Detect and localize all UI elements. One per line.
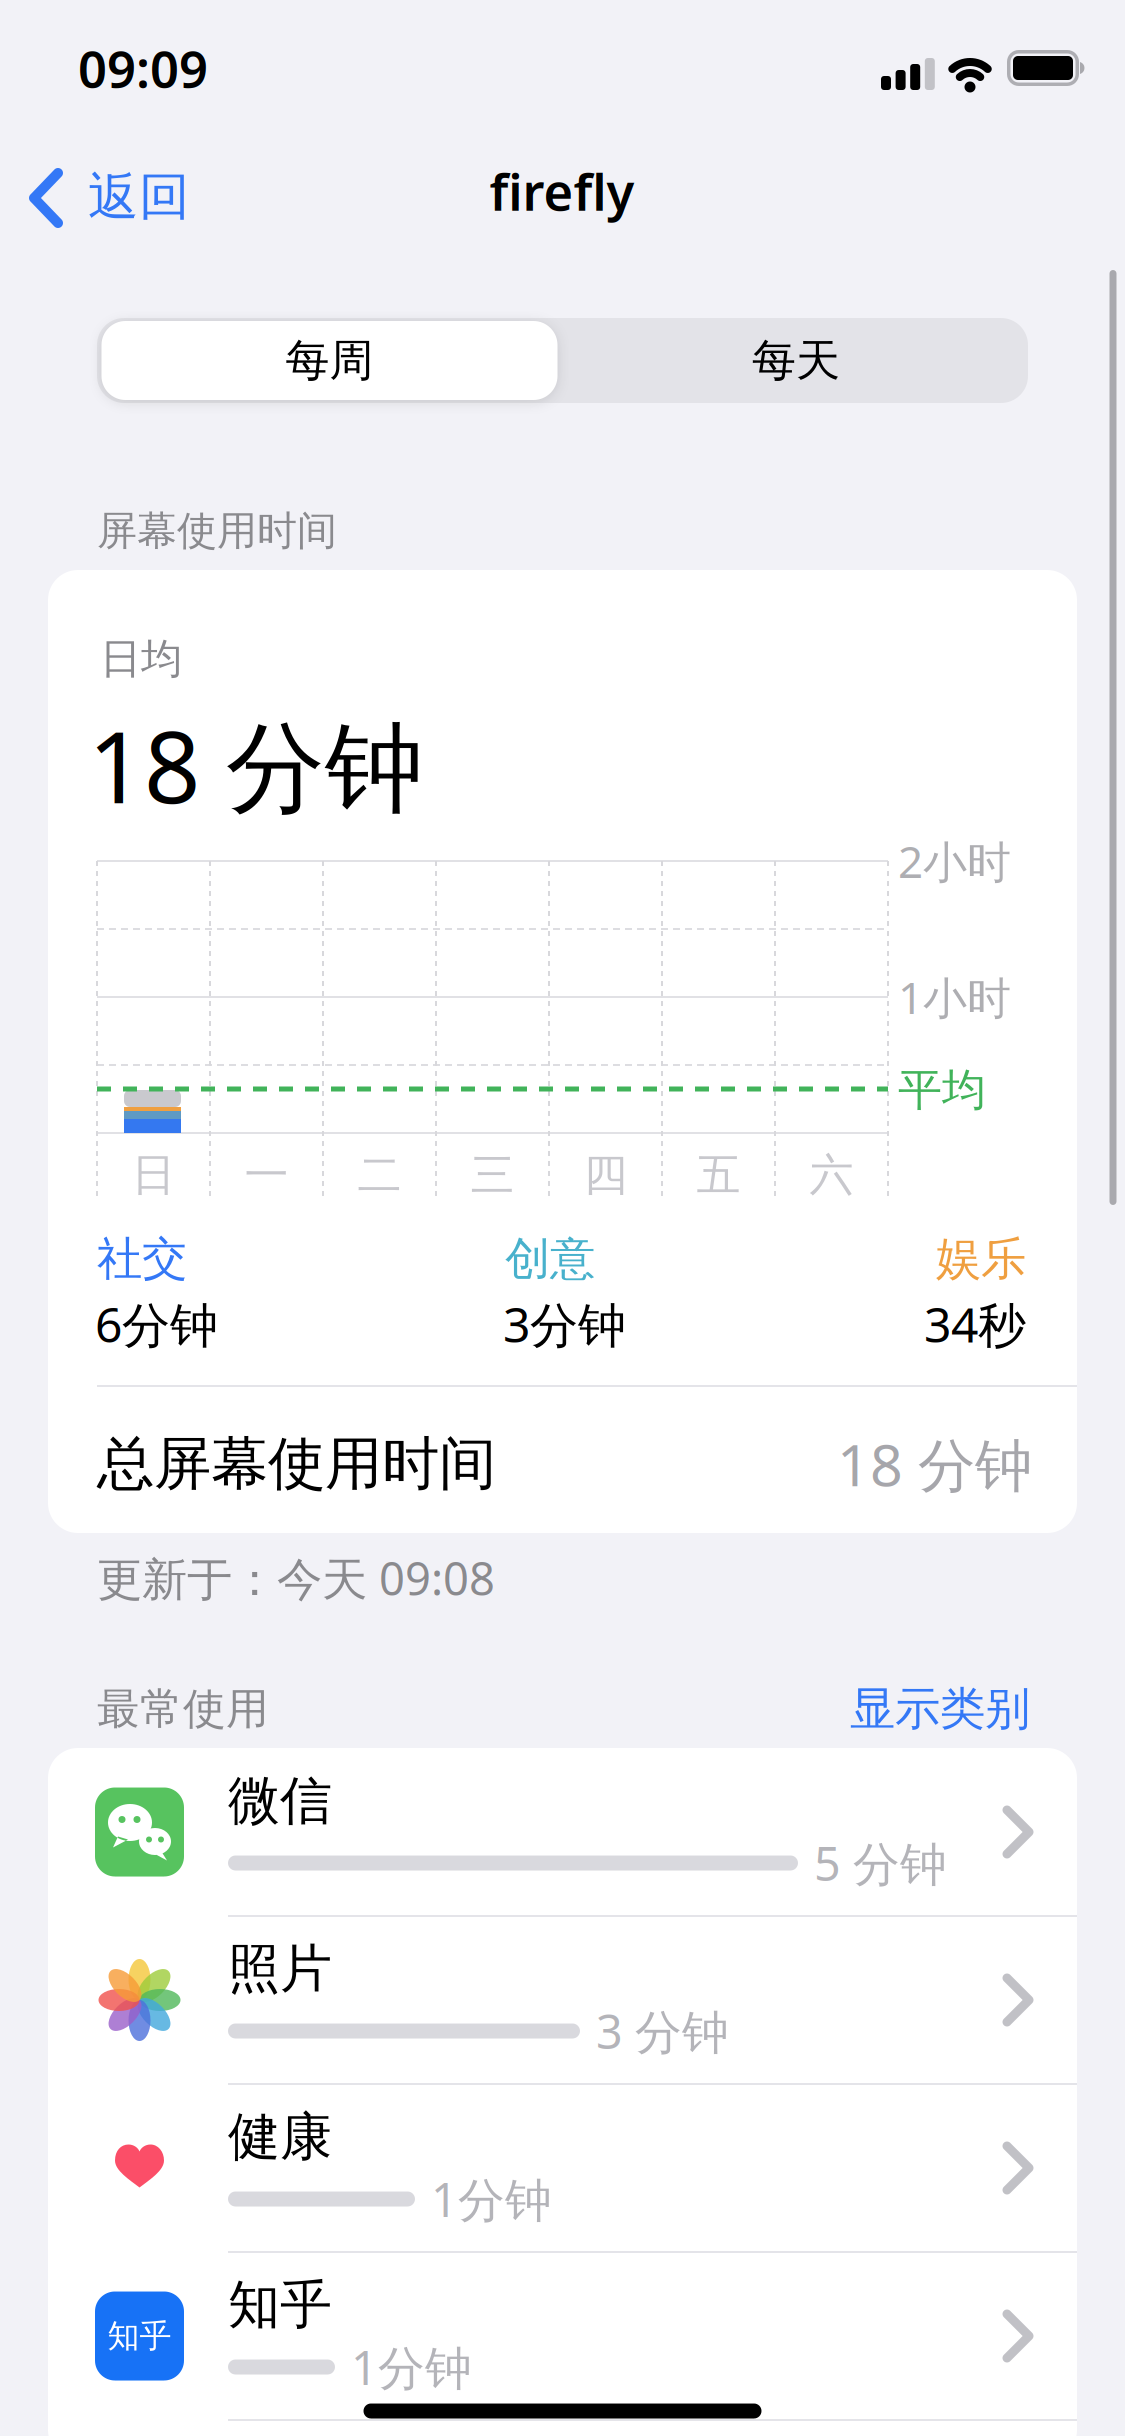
staticText: 四 — [583, 1148, 627, 1202]
staticText: 社交 — [97, 1231, 187, 1287]
staticText: 5 分钟 — [814, 1832, 947, 1894]
staticText: 18 分钟 — [88, 699, 424, 830]
button[interactable]: 知乎 — [48, 2252, 1077, 2420]
staticText: 平均 — [898, 1063, 986, 1117]
staticText: 日 — [131, 1148, 175, 1202]
staticText: 最常使用 — [97, 1683, 269, 1735]
staticText: 返回 — [88, 166, 190, 228]
staticText: 日均 — [100, 634, 182, 684]
staticText: 1分钟 — [431, 2168, 552, 2230]
staticText: 6分钟 — [95, 1292, 218, 1356]
staticText: 知乎 — [228, 2273, 332, 2337]
staticText: 五 — [696, 1148, 740, 1202]
staticText: 一 — [244, 1148, 288, 1202]
button[interactable]: 返回 — [24, 163, 210, 233]
staticText: 总屏幕使用时间 — [97, 1429, 496, 1499]
staticText: 3分钟 — [503, 1292, 626, 1356]
staticText: 18 分钟 — [837, 1426, 1032, 1502]
staticText: 创意 — [505, 1231, 595, 1287]
staticText: 每天 — [752, 333, 840, 387]
button[interactable]: 照片 — [48, 1916, 1077, 2084]
staticText: 1小时 — [898, 968, 1011, 1026]
staticText: 显示类别 — [850, 1681, 1030, 1737]
button[interactable]: 显示类别 — [730, 1669, 1030, 1749]
staticText: 2小时 — [898, 832, 1011, 890]
button[interactable]: 每周 — [101, 321, 557, 400]
staticText: 二 — [357, 1148, 401, 1202]
staticText: 更新于：今天 09:08 — [97, 1548, 495, 1608]
button[interactable]: 微信 — [48, 1748, 1077, 1916]
staticText: 3 分钟 — [596, 2000, 729, 2062]
staticText: 三 — [470, 1148, 514, 1202]
staticText: 知乎 — [107, 2316, 171, 2356]
staticText: 09:09 — [78, 34, 208, 102]
staticText: 健康 — [228, 2105, 332, 2169]
button[interactable]: 健康 — [48, 2084, 1077, 2252]
staticText: 每周 — [285, 333, 373, 387]
staticText: 34秒 — [924, 1292, 1026, 1356]
staticText: 微信 — [228, 1769, 332, 1833]
staticText: 1分钟 — [351, 2336, 472, 2398]
staticText: firefly — [489, 157, 634, 225]
staticText: 娱乐 — [936, 1231, 1026, 1287]
staticText: 六 — [809, 1148, 853, 1202]
staticText: 屏幕使用时间 — [97, 506, 337, 555]
button[interactable]: 每天 — [566, 318, 1026, 403]
staticText: 照片 — [228, 1937, 332, 2001]
